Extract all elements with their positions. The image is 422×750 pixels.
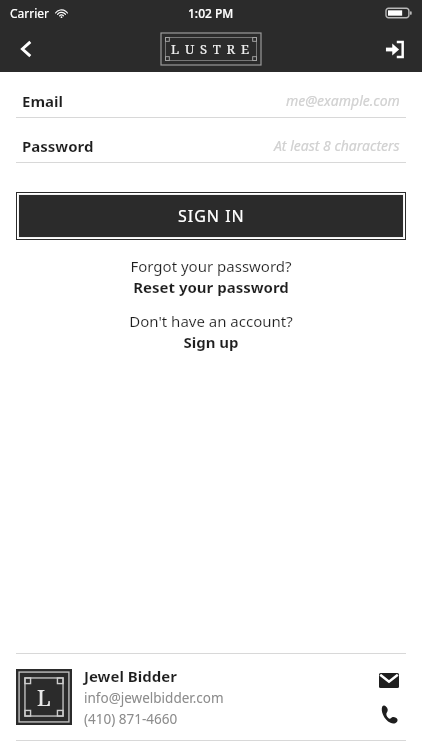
button[interactable]: Don't have an account? — [0, 311, 422, 352]
staticText: Carrier — [10, 5, 50, 21]
button[interactable]: SIGN IN — [19, 195, 403, 237]
button[interactable]: Email — [0, 84, 422, 129]
button[interactable]: Password — [0, 129, 422, 174]
button[interactable]: Sign in — [374, 29, 414, 69]
staticText: Email — [22, 91, 63, 111]
staticText: Forgot your password? — [130, 256, 292, 276]
staticText: Reset your password — [133, 277, 289, 297]
button[interactable]: Call us — [372, 697, 406, 731]
staticText: Sign up — [183, 332, 239, 352]
staticText: L U S T R E — [171, 40, 251, 58]
staticText: SIGN IN — [178, 205, 245, 227]
staticText: (410) 871-4660 — [84, 710, 178, 728]
button[interactable]: Forgot your password? — [0, 256, 422, 297]
button[interactable]: Email us — [372, 663, 406, 697]
button[interactable]: Back — [6, 29, 46, 69]
staticText: Don't have an account? — [129, 311, 293, 331]
staticText: info@jewelbidder.com — [84, 689, 224, 707]
staticText: L — [37, 682, 51, 712]
staticText: me@example.com — [286, 91, 400, 110]
staticText: Jewel Bidder — [84, 666, 177, 686]
staticText: 1:02 PM — [188, 5, 234, 21]
staticText: At least 8 characters — [274, 136, 400, 155]
staticText: Password — [22, 136, 94, 156]
